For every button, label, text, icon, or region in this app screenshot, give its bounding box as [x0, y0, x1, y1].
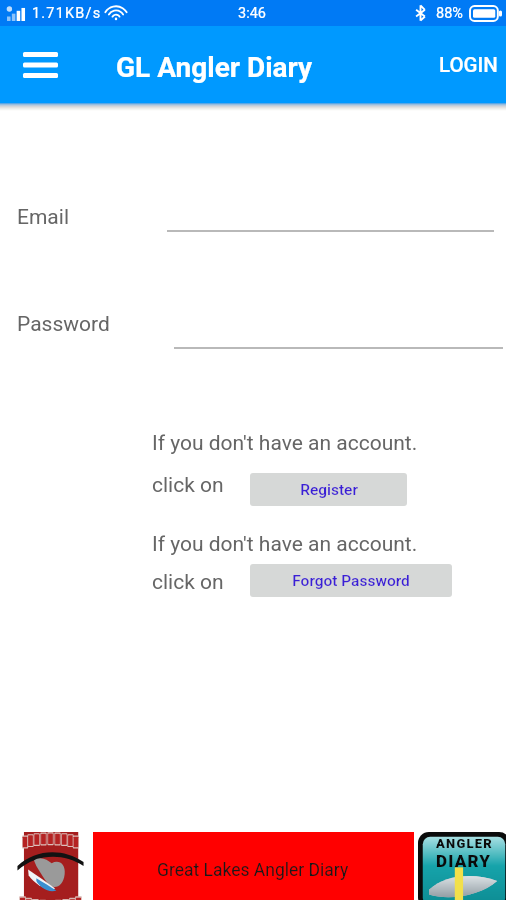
staticText: Password: [17, 312, 110, 337]
button[interactable]: LOGIN: [425, 39, 506, 91]
staticText: 88%: [436, 5, 463, 22]
staticText: 1.71KB/s: [32, 5, 102, 22]
staticText: GL Angler Diary: [116, 51, 313, 84]
button[interactable]: Open navigation drawer: [14, 39, 66, 91]
staticText: LOGIN: [439, 53, 498, 77]
staticText: click on: [152, 570, 224, 595]
staticText: Email: [17, 205, 69, 230]
staticText: Forgot Password: [292, 572, 410, 590]
staticText: Register: [300, 481, 358, 499]
staticText: If you don't have an account.: [152, 532, 418, 557]
button[interactable]: Register: [250, 473, 407, 506]
staticText: click on: [152, 473, 224, 498]
staticText: 3:46: [238, 5, 266, 22]
staticText: DIARY: [436, 851, 492, 871]
staticText: Great Lakes Angler Diary: [157, 860, 349, 881]
button[interactable]: Forgot Password: [250, 564, 452, 597]
staticText: If you don't have an account.: [152, 431, 418, 456]
staticText: ANGLER: [436, 836, 493, 851]
